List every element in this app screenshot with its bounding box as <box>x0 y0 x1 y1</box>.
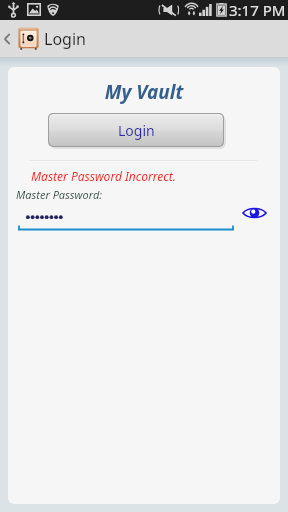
other: Navigate up <box>4 33 10 45</box>
staticText: My Vault <box>8 79 280 105</box>
staticText: 3:17 PM <box>229 0 286 20</box>
button[interactable]: Show password <box>237 196 271 230</box>
button[interactable]: Login <box>49 114 223 146</box>
staticText: Master Password: <box>16 187 103 202</box>
staticText: Login <box>44 28 86 50</box>
button[interactable]: Navigate up <box>0 20 110 57</box>
button[interactable]: Master Password input <box>18 202 234 230</box>
staticText: Master Password Incorrect. <box>31 168 176 184</box>
staticText: Login <box>118 121 155 140</box>
